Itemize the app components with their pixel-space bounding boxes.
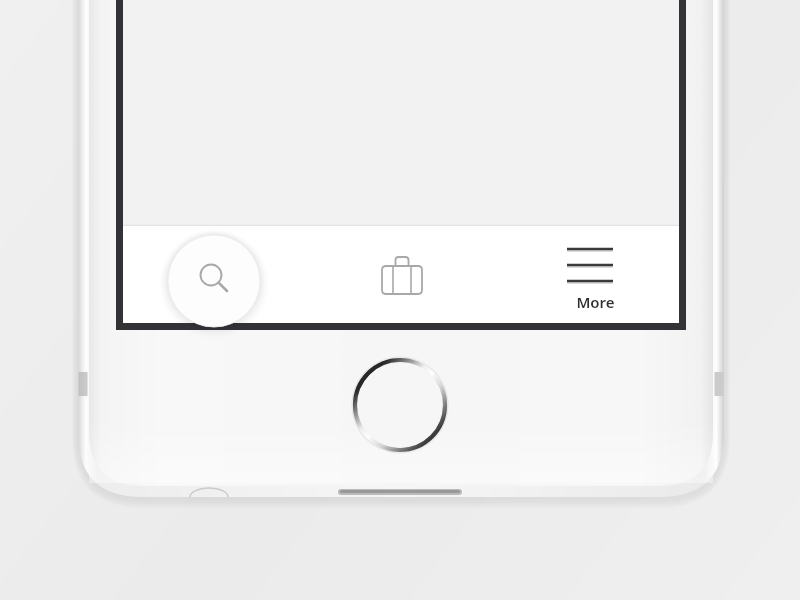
button[interactable]: Trips xyxy=(340,228,460,328)
button[interactable]: Search xyxy=(168,235,260,327)
button[interactable]: More xyxy=(540,228,650,328)
staticText: More xyxy=(576,292,615,312)
